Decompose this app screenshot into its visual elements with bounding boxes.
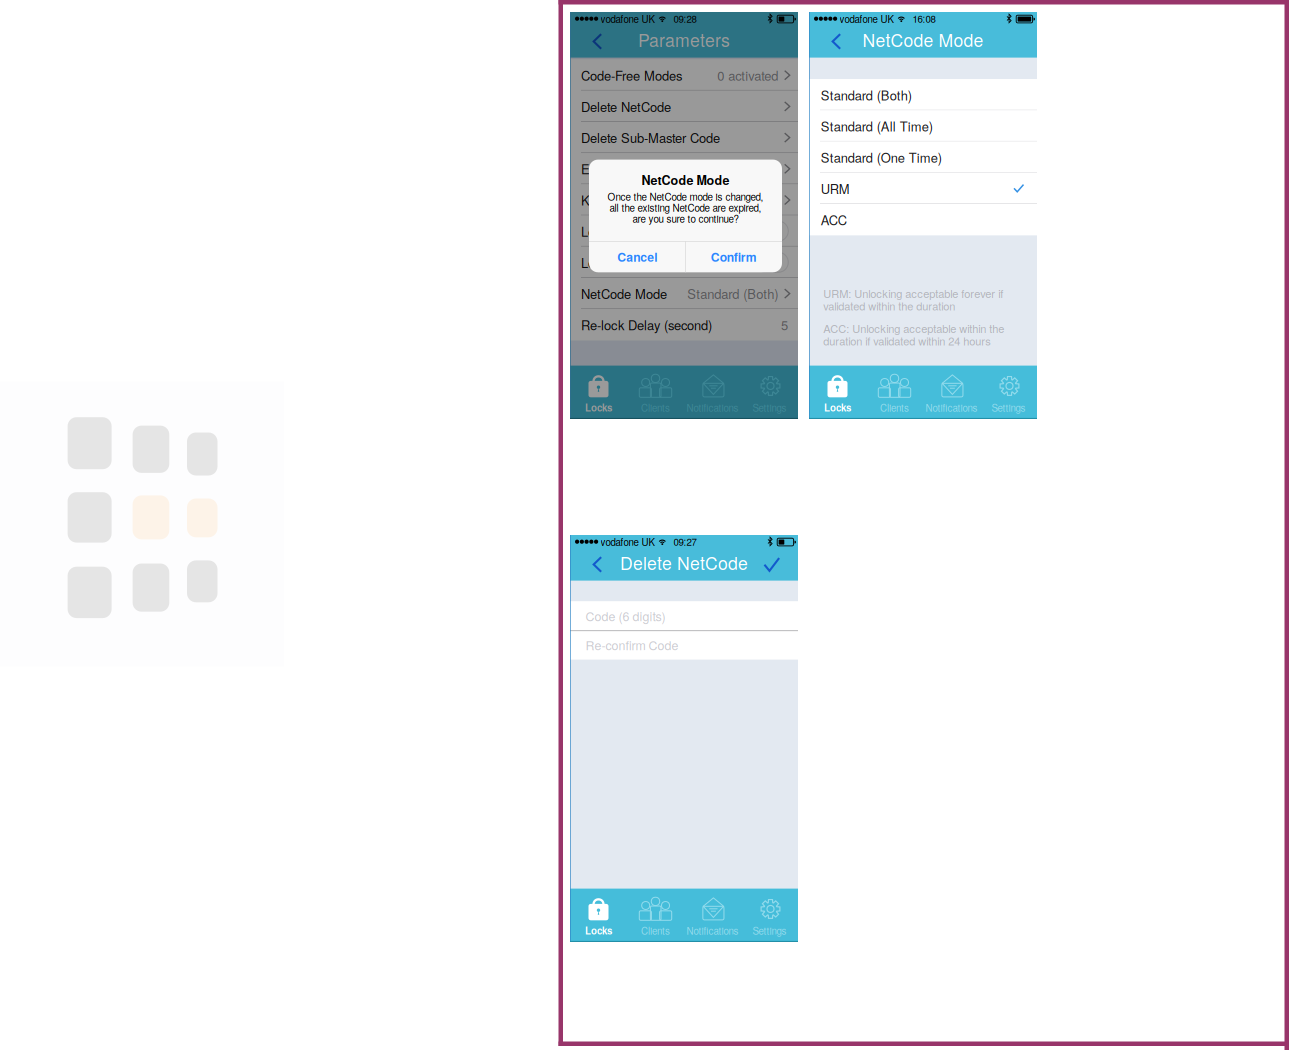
button[interactable]: Lock LED	[570, 247, 798, 278]
button[interactable]: Back	[584, 548, 610, 581]
button[interactable]: Locks	[570, 366, 627, 419]
button[interactable]: Settings	[980, 366, 1037, 419]
staticText: Export Log	[581, 159, 644, 178]
button[interactable]: Settings	[741, 366, 798, 419]
button[interactable]: Back	[584, 25, 610, 58]
button[interactable]: NetCode Mode	[570, 278, 798, 309]
staticText: URM: Unlocking acceptable forever if	[823, 285, 1003, 301]
staticText: Lock LED	[581, 253, 637, 271]
staticText: Re-lock Delay (second)	[581, 315, 712, 334]
staticText: 0 activated	[717, 66, 778, 84]
staticText: Once the NetCode mode is changed,	[607, 189, 763, 203]
button[interactable]: Standard (Both)	[809, 79, 1037, 110]
button[interactable]: Locks	[809, 366, 866, 419]
staticText: Cancel	[617, 248, 657, 265]
staticText: Locks	[824, 400, 851, 414]
button[interactable]: Clients	[627, 889, 684, 942]
button[interactable]: Standard (All Time)	[809, 110, 1037, 142]
staticText: URM	[821, 179, 850, 198]
staticText: Parameters	[638, 27, 730, 52]
button[interactable]: Settings	[741, 889, 798, 942]
button[interactable]: Notifications	[684, 366, 741, 419]
button[interactable]: ACC	[809, 204, 1037, 235]
staticText: 16:08	[912, 12, 935, 26]
staticText: duration if validated within 24 hours	[823, 333, 991, 349]
staticText: Delete NetCode	[620, 550, 748, 575]
staticText: 5	[781, 315, 788, 334]
button[interactable]: Lock Sound	[570, 215, 798, 247]
button[interactable]: Delete NetCode	[570, 91, 798, 122]
button[interactable]: Notifications	[684, 889, 741, 942]
button[interactable]: URM	[809, 173, 1037, 204]
staticText: Clients	[641, 400, 670, 414]
staticText: 09:28	[673, 12, 696, 26]
staticText: NetCode Mode	[581, 284, 667, 303]
button[interactable]: Locks	[570, 889, 627, 942]
button[interactable]: Confirm	[685, 241, 782, 272]
staticText: all the existing NetCode are expired,	[609, 200, 761, 214]
staticText: validated within the duration	[823, 298, 955, 314]
staticText: Settings	[752, 923, 786, 937]
staticText: Locks	[585, 400, 612, 414]
button[interactable]: Re-lock Delay (second)	[570, 309, 798, 340]
staticText: vodafone UK	[839, 12, 893, 26]
button[interactable]: Notifications	[923, 366, 980, 419]
button[interactable]: Re-confirm Code	[570, 630, 798, 660]
staticText: 09:27	[673, 535, 696, 549]
staticText: Notifications	[686, 400, 738, 414]
staticText: Standard (Both)	[687, 284, 778, 303]
staticText: Lock Sound	[581, 222, 649, 240]
button[interactable]: Delete Sub-Master Code	[570, 122, 798, 153]
staticText: Standard (One Time)	[821, 148, 942, 166]
staticText: vodafone UK	[600, 535, 654, 549]
staticText: vodafone UK	[600, 12, 654, 26]
button[interactable]: Back	[823, 25, 849, 58]
staticText: Locks	[585, 923, 612, 937]
staticText: Re-confirm Code	[585, 636, 678, 654]
staticText: Clients	[641, 923, 670, 937]
button[interactable]: Standard (One Time)	[809, 142, 1037, 173]
staticText: Settings	[752, 400, 786, 414]
staticText: Code-Free Modes	[581, 66, 682, 84]
staticText: Confirm	[711, 248, 757, 265]
staticText: Delete NetCode	[581, 97, 671, 115]
staticText: ACC	[821, 210, 847, 229]
staticText: NetCode Mode	[862, 27, 983, 52]
staticText: Clients	[880, 400, 909, 414]
button[interactable]: Keypad Light	[570, 184, 798, 215]
staticText: Standard (All Time)	[821, 117, 933, 135]
staticText: are you sure to continue?	[632, 211, 738, 225]
staticText: Keypad Light	[581, 191, 655, 209]
staticText: ACC: Unlocking acceptable within the	[823, 320, 1004, 336]
staticText: Settings	[991, 400, 1025, 414]
button[interactable]: Export Log	[570, 153, 798, 184]
staticText: Code (6 digits)	[585, 607, 665, 625]
staticText: Standard (Both)	[821, 85, 912, 104]
staticText: Notifications	[925, 400, 977, 414]
button[interactable]: Clients	[627, 366, 684, 419]
button[interactable]: Cancel	[589, 241, 685, 272]
button[interactable]: Code-Free Modes	[570, 59, 798, 91]
button[interactable]: Save	[759, 548, 785, 581]
button[interactable]: Clients	[866, 366, 923, 419]
staticText: NetCode Mode	[641, 171, 729, 189]
staticText: Delete Sub-Master Code	[581, 128, 720, 147]
staticText: Notifications	[686, 923, 738, 937]
button[interactable]: Code (6 digits)	[570, 601, 798, 630]
